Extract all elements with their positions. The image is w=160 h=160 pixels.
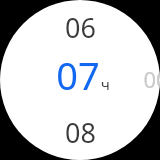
- button[interactable]: Previous hour 06: [40, 6, 120, 50]
- button[interactable]: Selected hour, 07 hours: [36, 54, 124, 102]
- button[interactable]: Next hour 08: [40, 111, 120, 155]
- staticText: 06: [65, 9, 96, 46]
- button[interactable]: Minutes, 00: [132, 56, 160, 104]
- staticText: 08: [65, 114, 96, 151]
- staticText: 00: [143, 64, 160, 94]
- staticText: ч: [101, 74, 110, 94]
- staticText: 07: [56, 49, 100, 97]
